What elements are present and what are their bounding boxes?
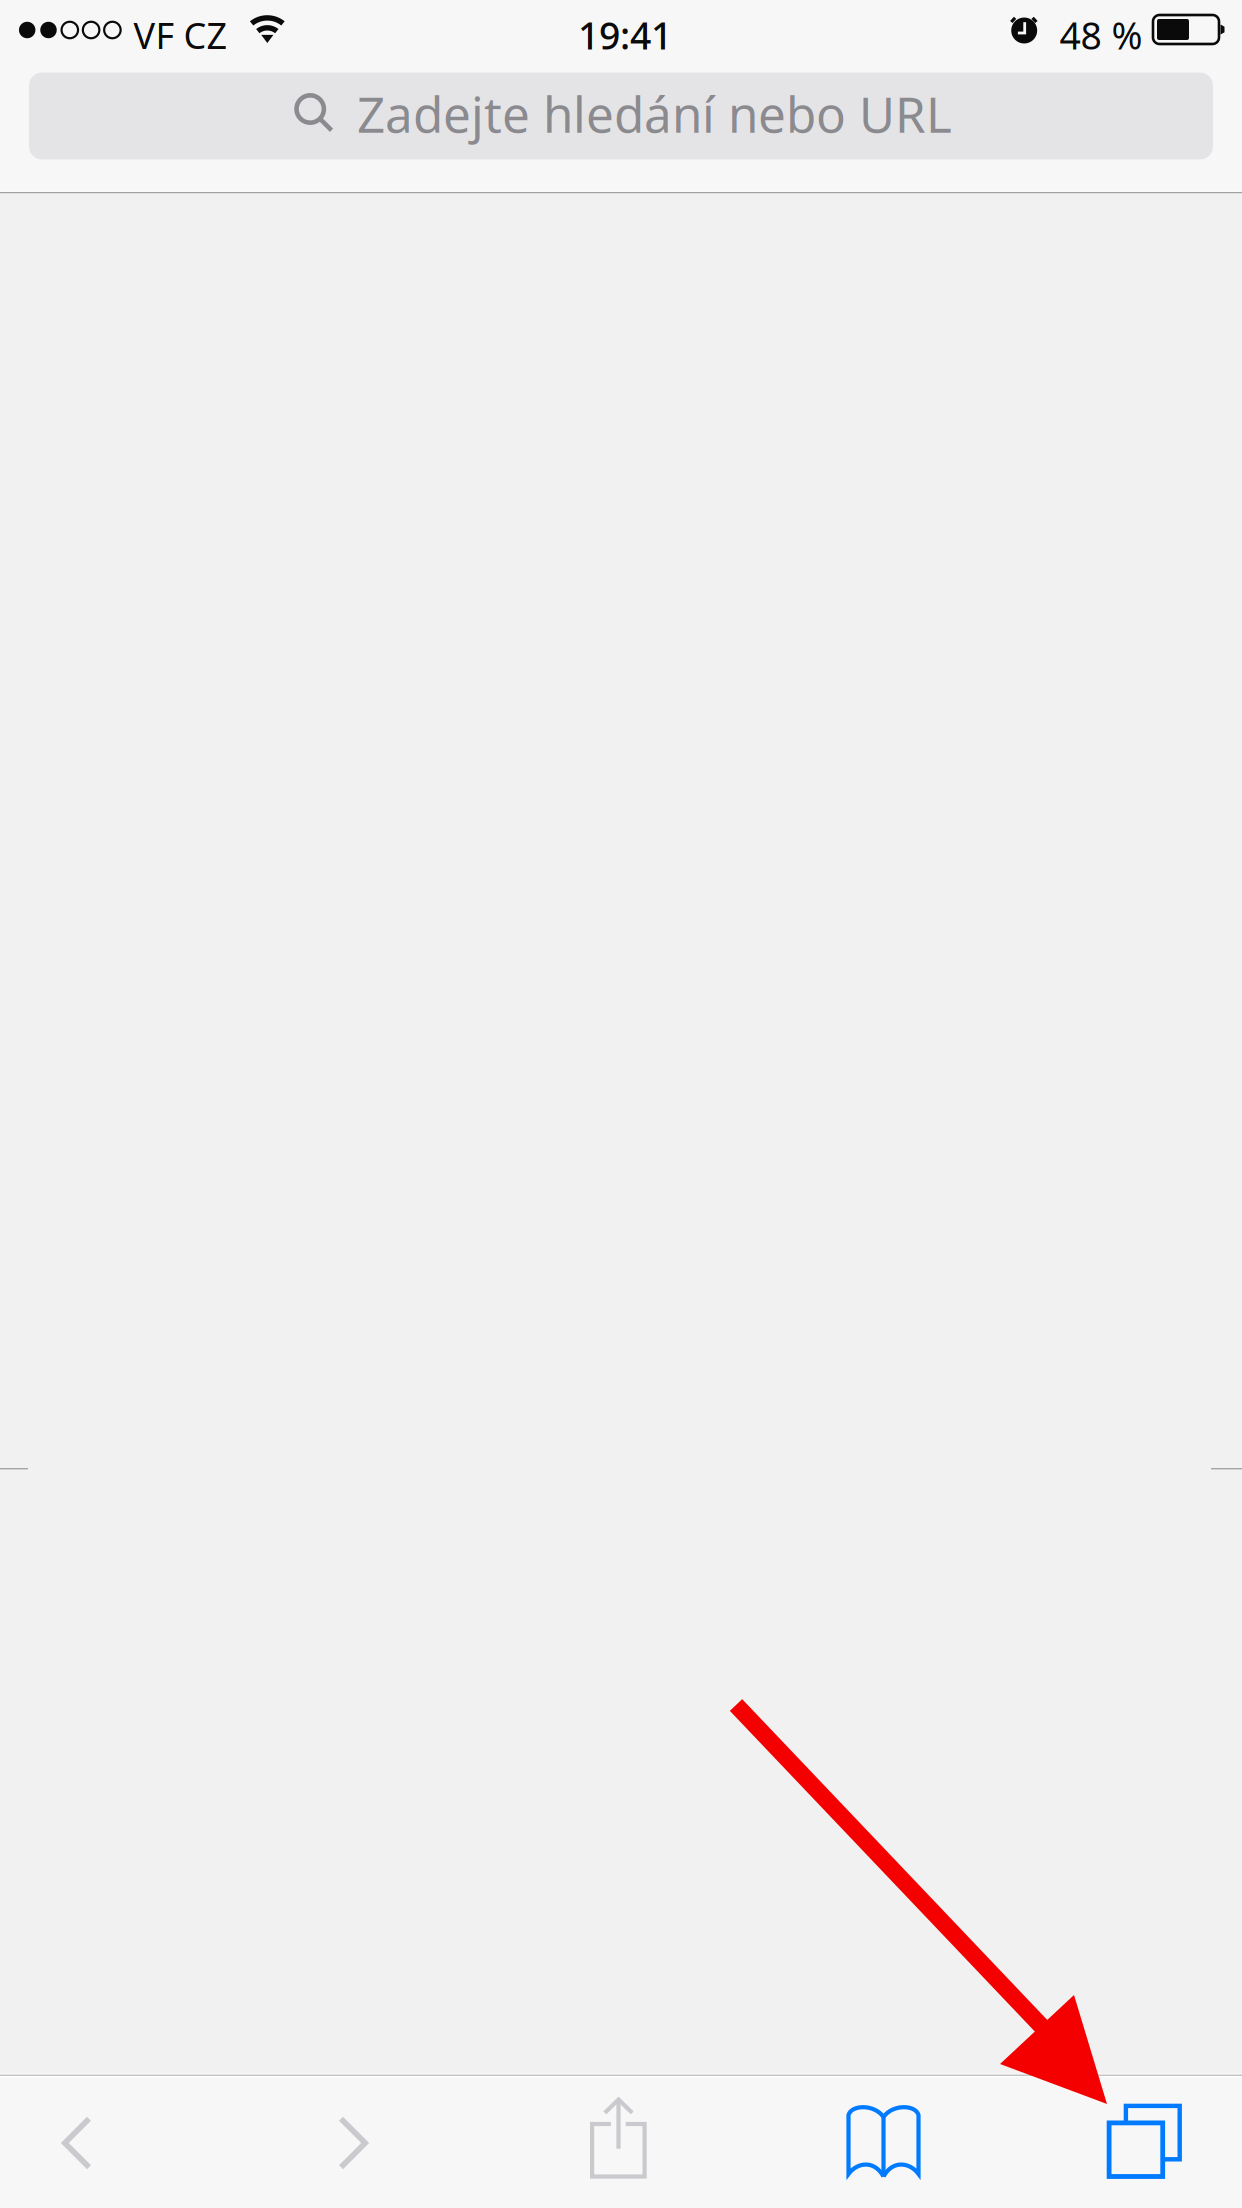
staticText: Zadejte hledání nebo URL	[357, 81, 952, 146]
button[interactable]: Vpřed	[288, 2076, 418, 2208]
staticText: 48 %	[1059, 10, 1142, 60]
button[interactable]: Záložky	[818, 2076, 948, 2208]
button[interactable]: Zpět	[12, 2076, 142, 2208]
button[interactable]: Panely	[1079, 2076, 1209, 2208]
staticText: VF CZ	[133, 11, 227, 59]
button[interactable]: Zadejte hledání nebo URL	[29, 72, 1213, 159]
button[interactable]: Sdílet	[553, 2076, 683, 2208]
staticText: 19:41	[578, 10, 672, 60]
